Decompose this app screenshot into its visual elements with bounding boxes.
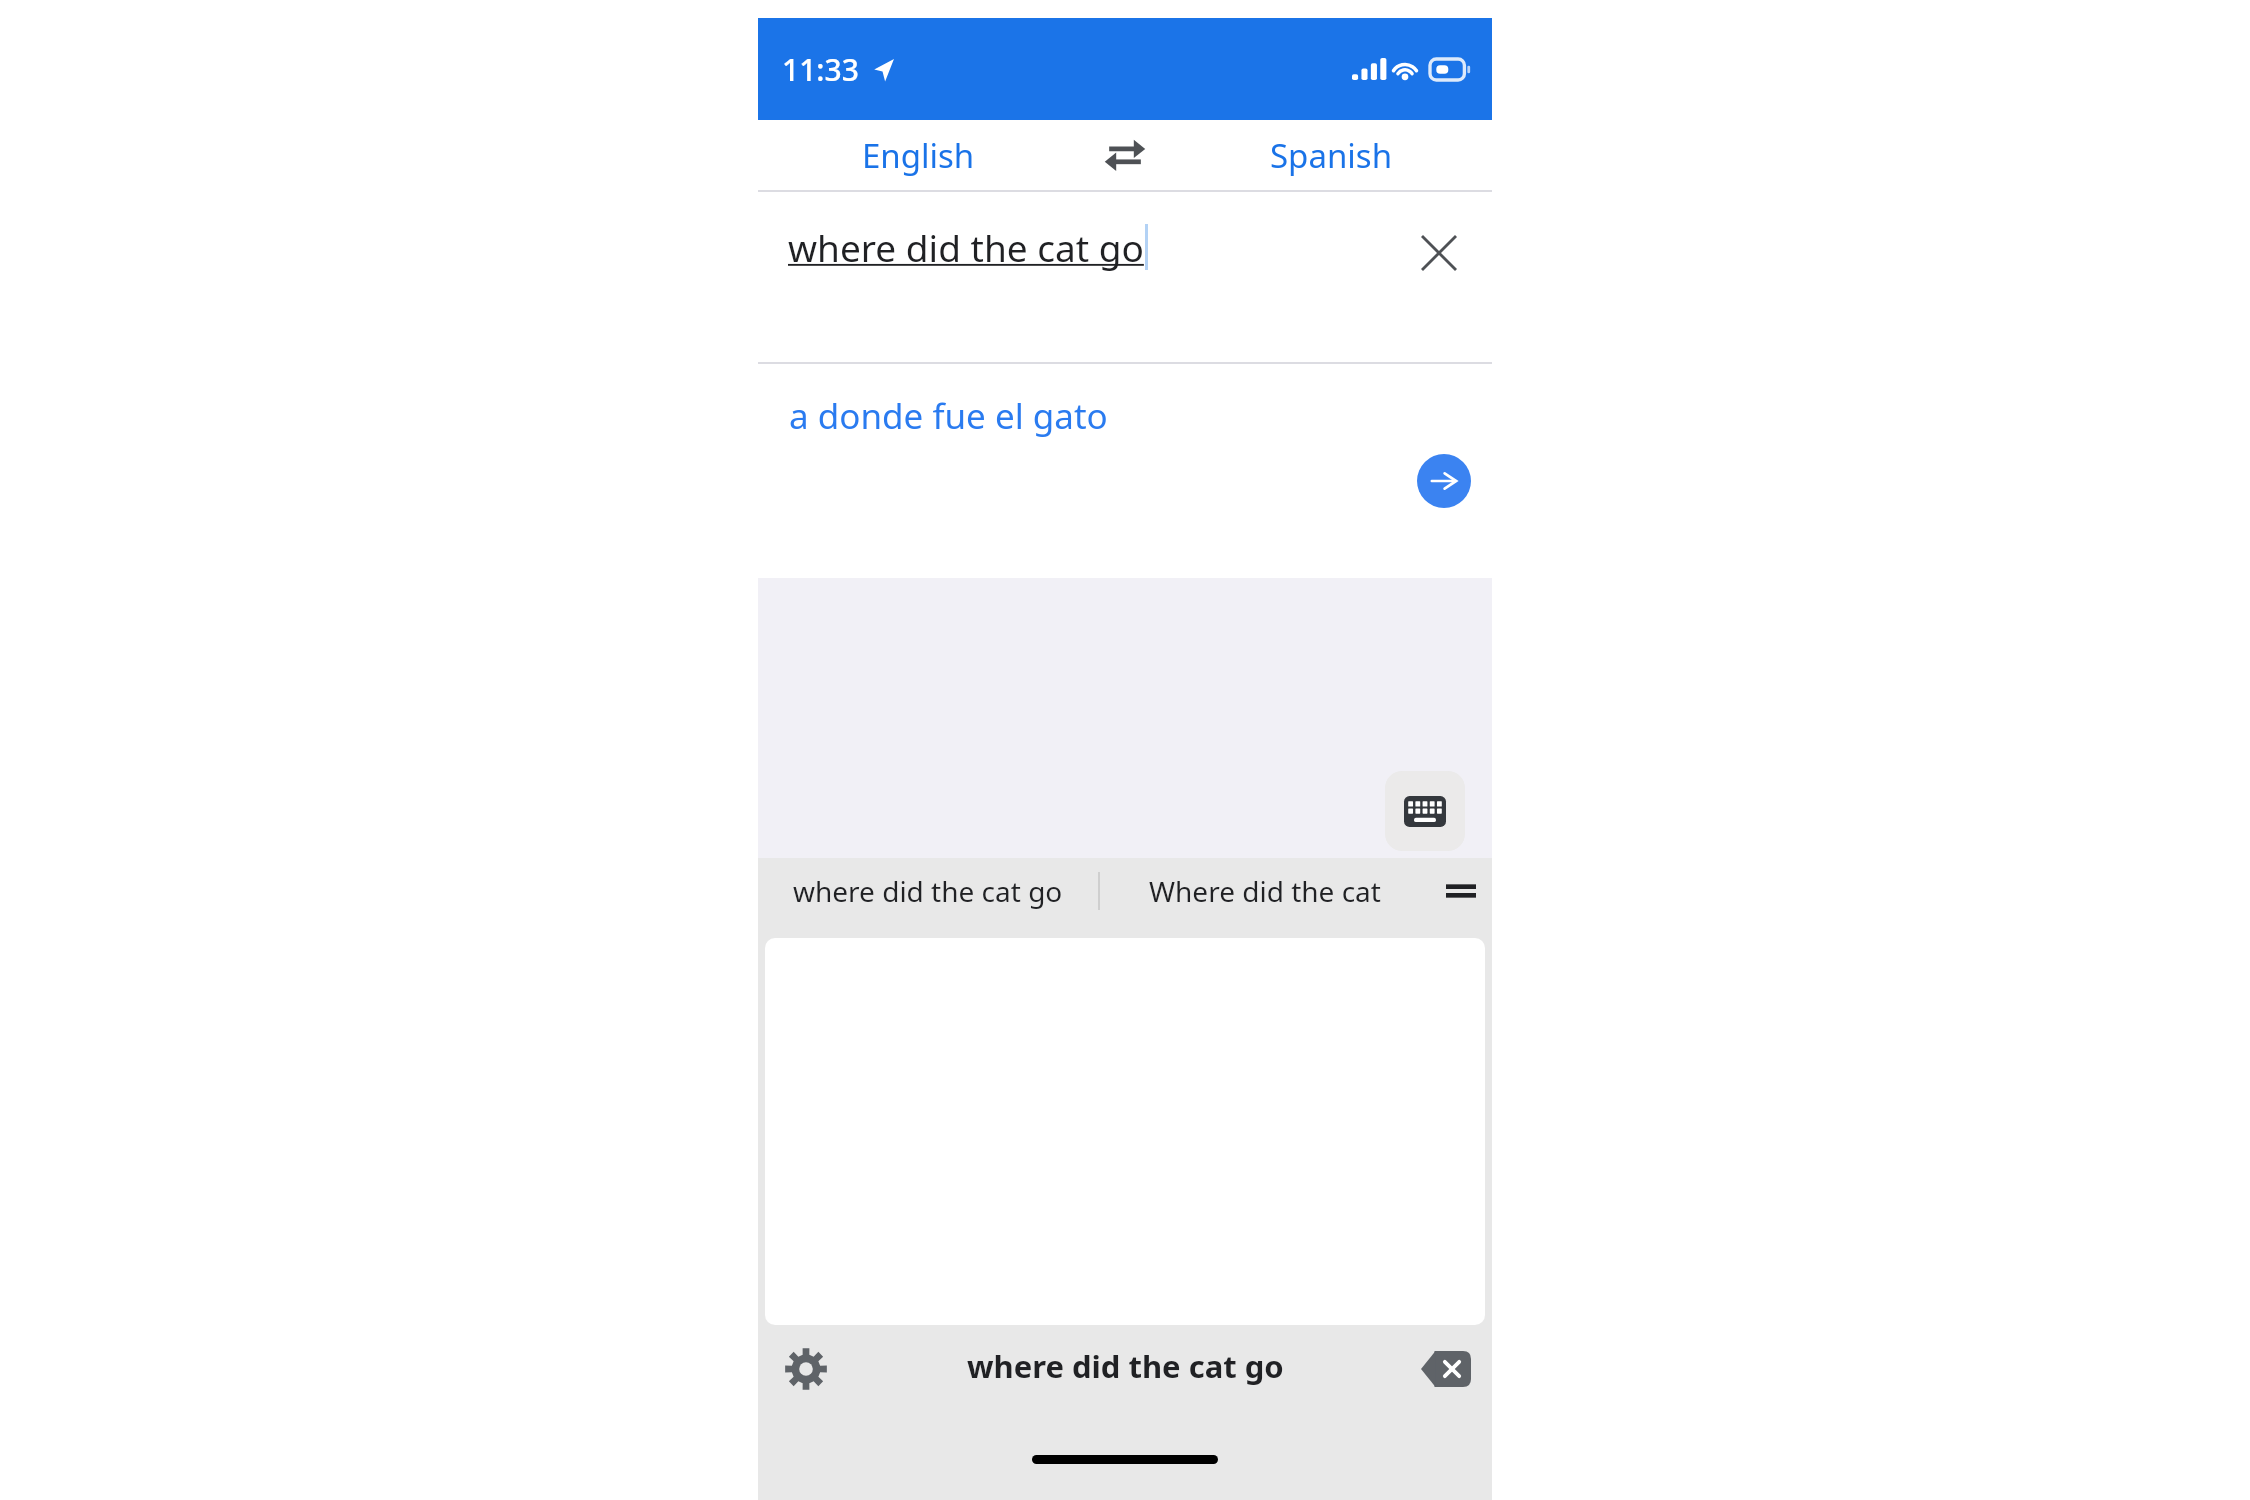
staticText: a donde fue el gato bbox=[789, 392, 1108, 440]
staticText: where did the cat go bbox=[967, 1345, 1284, 1387]
button[interactable]: More suggestions bbox=[1430, 858, 1492, 923]
staticText: where did the cat go bbox=[793, 872, 1063, 910]
button[interactable]: Settings bbox=[768, 1331, 844, 1407]
staticText: 11:33 bbox=[782, 49, 859, 90]
button[interactable]: English bbox=[758, 120, 1079, 190]
button[interactable]: Spanish bbox=[1171, 120, 1492, 190]
staticText: English bbox=[862, 133, 975, 178]
button[interactable]: Where did the cat bbox=[1100, 858, 1430, 923]
button[interactable]: Clear text bbox=[1408, 222, 1470, 284]
staticText: Spanish bbox=[1270, 133, 1393, 178]
button[interactable]: Show keyboard bbox=[1385, 771, 1465, 851]
button[interactable]: Go bbox=[1417, 454, 1471, 508]
staticText: where did the cat go bbox=[788, 222, 1144, 272]
staticText: Where did the cat bbox=[1149, 872, 1381, 910]
button[interactable]: Swap languages bbox=[1079, 120, 1171, 190]
button[interactable]: Backspace bbox=[1412, 1335, 1480, 1403]
button[interactable]: where did the cat go bbox=[758, 858, 1098, 923]
